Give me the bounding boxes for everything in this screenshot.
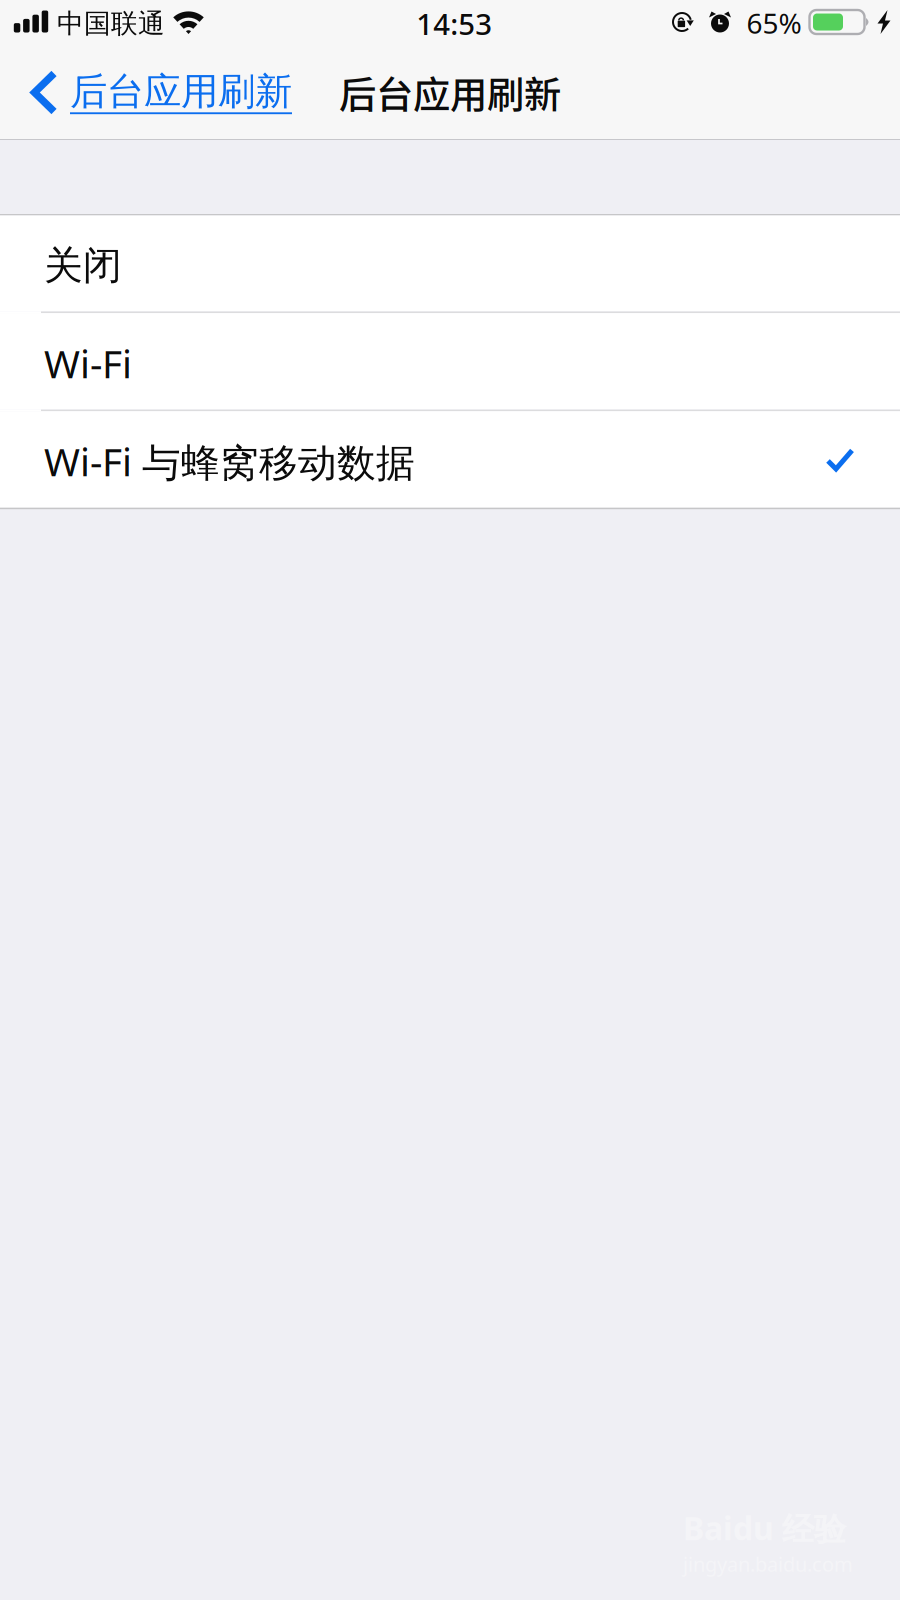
staticText: 后台应用刷新 [70, 69, 292, 114]
staticText: Wi-Fi 与蜂窝移动数据 [44, 436, 415, 487]
staticText: Wi-Fi [44, 338, 132, 389]
button[interactable]: 关闭 [0, 215, 900, 311]
staticText: 关闭 [44, 242, 122, 289]
staticText: 14:53 [416, 4, 492, 43]
staticText: 65% [746, 4, 801, 42]
button[interactable]: Wi-Fi 与蜂窝移动数据 [0, 411, 900, 508]
staticText: 后台应用刷新 [339, 65, 561, 120]
button[interactable]: Wi-Fi [0, 313, 900, 410]
staticText: 中国联通 [57, 7, 165, 40]
button[interactable]: 后台应用刷新 [0, 54, 306, 139]
